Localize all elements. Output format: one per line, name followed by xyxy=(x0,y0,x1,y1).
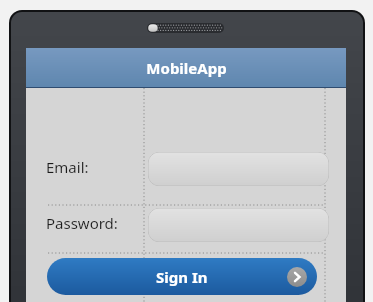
button[interactable]: Sign In xyxy=(47,258,317,295)
button[interactable]: Password input xyxy=(148,208,329,242)
staticText: Password: xyxy=(46,213,118,233)
other: Proceed xyxy=(287,267,307,287)
staticText: Sign In xyxy=(156,267,208,287)
staticText: MobileApp xyxy=(146,58,227,78)
button[interactable]: Email input xyxy=(148,152,329,186)
staticText: Email: xyxy=(46,157,89,177)
